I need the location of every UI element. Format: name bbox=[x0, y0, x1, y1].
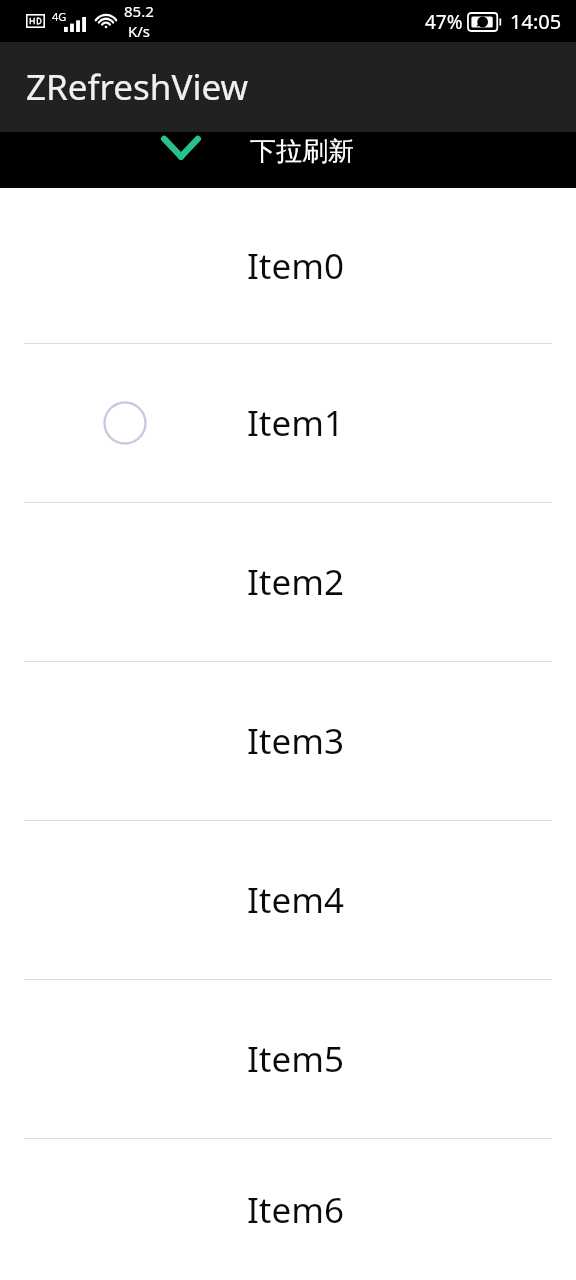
staticText: K/s bbox=[128, 21, 151, 41]
staticText: 下拉刷新 bbox=[250, 135, 354, 168]
staticText: Item5 bbox=[247, 1035, 344, 1083]
staticText: 47% bbox=[425, 9, 463, 35]
staticText: 14:05 bbox=[510, 8, 562, 35]
staticText: Item3 bbox=[247, 717, 344, 765]
staticText: 85.2 bbox=[124, 1, 154, 21]
staticText: ZRefreshView bbox=[26, 63, 249, 111]
staticText: 4G bbox=[52, 9, 67, 24]
button[interactable]: Item0 bbox=[0, 188, 576, 343]
staticText: Item6 bbox=[247, 1186, 344, 1234]
button[interactable]: Item1 bbox=[0, 344, 576, 502]
button[interactable]: Item2 bbox=[0, 503, 576, 661]
button[interactable]: Item5 bbox=[0, 980, 576, 1138]
button[interactable]: Item6 bbox=[0, 1139, 576, 1280]
staticText: Item2 bbox=[247, 558, 344, 606]
staticText: Item0 bbox=[247, 242, 344, 290]
staticText: Item4 bbox=[247, 876, 344, 924]
button[interactable]: Item3 bbox=[0, 662, 576, 820]
button[interactable]: Item4 bbox=[0, 821, 576, 979]
staticText: Item1 bbox=[247, 399, 344, 447]
